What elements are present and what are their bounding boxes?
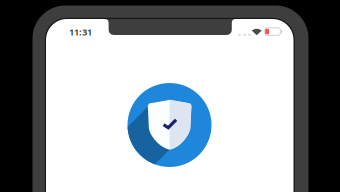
staticText: 11:31 (69, 26, 92, 38)
